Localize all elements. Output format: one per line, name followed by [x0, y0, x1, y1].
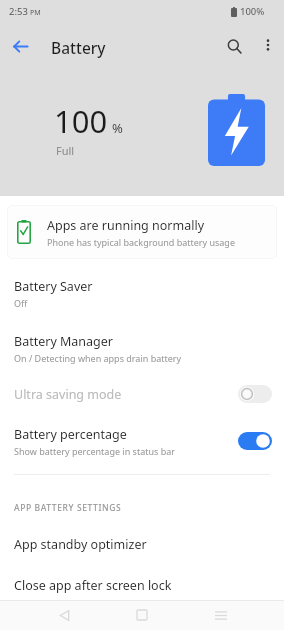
- staticText: Close app after screen lock: [14, 577, 172, 594]
- button[interactable]: Battery percentage: [0, 418, 284, 464]
- staticText: Battery: [51, 37, 106, 58]
- button[interactable]: Home: [127, 600, 157, 630]
- button[interactable]: Search: [220, 32, 248, 60]
- button[interactable]: Battery Saver: [0, 270, 284, 316]
- staticText: Off: [14, 297, 28, 309]
- staticText: APP BATTERY SETTINGS: [14, 502, 122, 514]
- button[interactable]: Close app after screen lock: [0, 569, 284, 600]
- staticText: PM: [30, 8, 41, 18]
- staticText: Ultra saving mode: [14, 386, 122, 403]
- staticText: 2:53: [9, 5, 28, 18]
- staticText: Battery Saver: [14, 278, 93, 295]
- staticText: Apps are running normally: [47, 217, 205, 234]
- button[interactable]: Back: [49, 600, 79, 630]
- staticText: 100: [54, 100, 108, 142]
- staticText: %: [112, 119, 123, 137]
- staticText: On / Detecting when apps drain battery: [14, 352, 182, 364]
- button[interactable]: Ultra saving mode: [0, 376, 284, 412]
- staticText: Full: [56, 143, 75, 158]
- button[interactable]: Ultra saving mode toggle, off: [238, 385, 272, 403]
- staticText: Show battery percentage in status bar: [14, 445, 175, 457]
- button[interactable]: Navigate up: [6, 32, 34, 60]
- staticText: 100%: [240, 5, 265, 18]
- button[interactable]: Recent apps: [206, 600, 236, 630]
- button[interactable]: Apps are running normally: [7, 205, 277, 259]
- button[interactable]: Battery Manager: [0, 325, 284, 371]
- button[interactable]: Battery percentage toggle, on: [238, 432, 272, 450]
- button[interactable]: App standby optimizer: [0, 526, 284, 562]
- staticText: Battery percentage: [14, 426, 127, 443]
- staticText: Battery Manager: [14, 333, 113, 350]
- staticText: Phone has typical background battery usa…: [47, 236, 235, 248]
- staticText: App standby optimizer: [14, 536, 147, 553]
- button[interactable]: More options: [255, 32, 281, 58]
